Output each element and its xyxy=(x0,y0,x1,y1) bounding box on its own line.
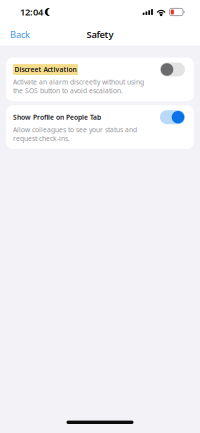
staticText: Show Profile on People Tab xyxy=(13,113,101,122)
staticText: Activate an alarm discreetly without usi… xyxy=(13,77,144,95)
staticText: Discreet Activation xyxy=(14,65,76,74)
staticText: Safety xyxy=(86,28,113,41)
button[interactable]: Back xyxy=(4,24,36,45)
staticText: 12:04 xyxy=(20,6,43,18)
button[interactable]: Show Profile on People Tab, on xyxy=(160,110,185,124)
staticText: Allow colleagues to see your status and … xyxy=(13,125,137,143)
staticText: Back xyxy=(10,28,30,41)
button[interactable]: Discreet Activation, off xyxy=(160,62,185,76)
